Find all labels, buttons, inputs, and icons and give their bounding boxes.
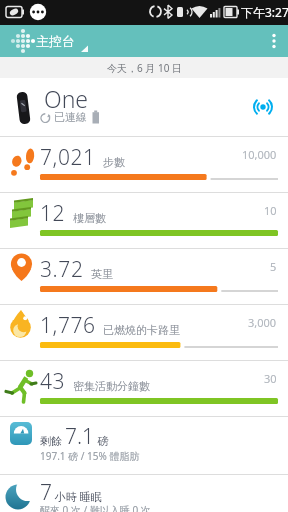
staticText: 197.1 磅 / 15% 體脂肪 bbox=[40, 449, 140, 463]
button[interactable]: 剩餘 bbox=[0, 416, 288, 474]
button[interactable]: 1,776 bbox=[0, 304, 288, 360]
staticText: 5 bbox=[270, 259, 277, 274]
staticText: 步數 bbox=[103, 155, 125, 169]
staticText: 1,776 bbox=[40, 311, 96, 340]
button[interactable]: 12 bbox=[0, 192, 288, 248]
staticText: 7,021 bbox=[40, 143, 96, 172]
button[interactable]: 7 bbox=[0, 474, 288, 512]
button[interactable]: 7,021 bbox=[0, 136, 288, 192]
staticText: 小時 睡眠 bbox=[52, 489, 102, 504]
staticText: 12 bbox=[40, 199, 66, 228]
staticText: 10 bbox=[264, 203, 277, 218]
staticText: 醒來 0 次 / 難以入睡 0 次 bbox=[40, 503, 151, 512]
staticText: 7 bbox=[40, 478, 52, 507]
staticText: 下午3:27 bbox=[241, 4, 288, 20]
staticText: 密集活動分鐘數 bbox=[73, 379, 150, 393]
staticText: 已燃燒的卡路里 bbox=[103, 323, 180, 337]
staticText: 樓層數 bbox=[73, 211, 106, 225]
button[interactable]: One bbox=[0, 78, 288, 136]
staticText: 磅 bbox=[95, 433, 109, 448]
staticText: 3.72 bbox=[40, 255, 84, 284]
staticText: 英里 bbox=[91, 267, 113, 281]
staticText: 剩餘 bbox=[40, 433, 65, 448]
button[interactable] bbox=[258, 25, 288, 57]
staticText: 10,000 bbox=[242, 147, 277, 162]
staticText: 7.1 bbox=[65, 422, 95, 451]
staticText: 43 bbox=[40, 367, 66, 396]
staticText: 主控台 bbox=[36, 33, 75, 49]
button[interactable]: 3.72 bbox=[0, 248, 288, 304]
staticText: 今天，6 月 10 日 bbox=[107, 61, 182, 75]
staticText: One bbox=[44, 83, 89, 114]
staticText: 30 bbox=[264, 371, 277, 386]
staticText: 已連線 bbox=[54, 110, 87, 124]
staticText: 3,000 bbox=[248, 315, 277, 330]
button[interactable]: 43 bbox=[0, 360, 288, 416]
